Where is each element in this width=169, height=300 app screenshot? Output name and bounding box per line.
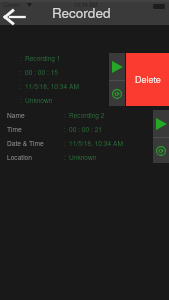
- staticText: Date & Time: [7, 138, 64, 147]
- staticText: Delete: [135, 73, 161, 86]
- staticText: 00 : 00 : 15: [25, 67, 58, 76]
- button[interactable]: Play: [109, 53, 125, 80]
- staticText: :: [64, 110, 66, 119]
- staticText: 11/5/18, 10:34 AM: [69, 138, 123, 147]
- staticText: Time: [7, 124, 64, 133]
- staticText: Recorded: [52, 3, 111, 22]
- staticText: 10:34 AM: [74, 1, 98, 9]
- staticText: Unknown: [25, 95, 53, 104]
- staticText: Name: [7, 110, 64, 119]
- button[interactable]: Back: [0, 8, 30, 25]
- staticText: Recording 2: [69, 110, 105, 119]
- staticText: Carrier: [3, 1, 20, 9]
- staticText: 11/5/18, 10:34 AM: [25, 81, 79, 90]
- button[interactable]: Play: [153, 110, 169, 137]
- button[interactable]: Share: [153, 138, 169, 163]
- staticText: :: [20, 67, 22, 76]
- staticText: Location: [7, 152, 64, 161]
- staticText: 00 : 00 : 21: [69, 124, 102, 133]
- button[interactable]: Delete: [126, 53, 169, 106]
- staticText: :: [64, 124, 66, 133]
- staticText: :: [64, 138, 66, 147]
- staticText: :: [20, 81, 22, 90]
- staticText: :: [20, 95, 22, 104]
- staticText: Unknown: [69, 152, 97, 161]
- staticText: :: [20, 53, 22, 62]
- button[interactable]: Share: [109, 81, 125, 106]
- staticText: Recording 1: [25, 53, 61, 62]
- staticText: :: [64, 152, 66, 161]
